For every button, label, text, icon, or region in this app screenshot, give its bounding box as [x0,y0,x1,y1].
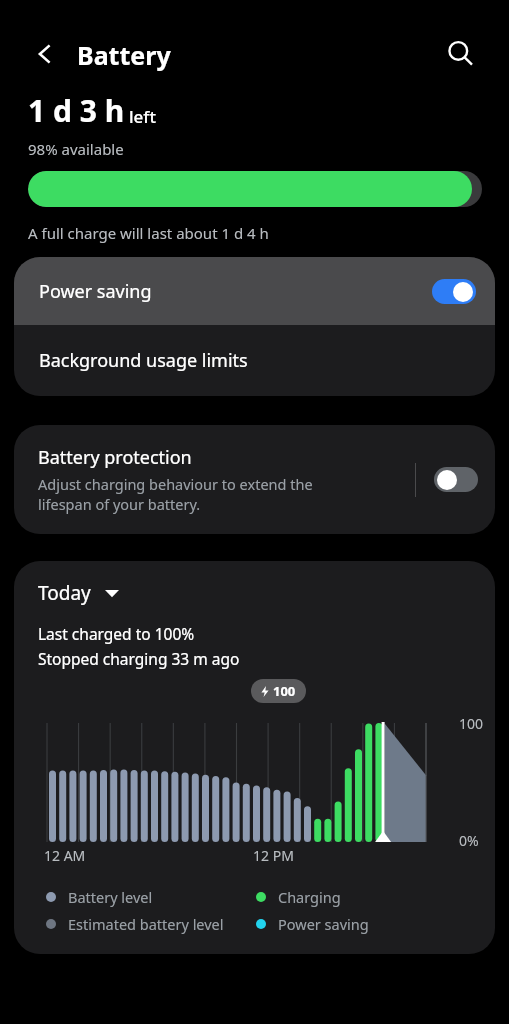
button[interactable]: Off [434,467,478,492]
staticText: A full charge will last about 1 d 4 h [28,223,269,243]
staticText: Battery [77,38,171,72]
staticText: 100 [459,714,484,733]
staticText: 0% [459,831,479,850]
staticText: Last charged to 100% [38,623,195,644]
staticText: Power saving [278,914,369,934]
staticText: Battery level [68,887,153,907]
staticText: left [129,105,156,128]
button[interactable]: Today [38,580,119,606]
button[interactable]: Power saving [14,257,495,325]
button[interactable]: On [432,279,476,304]
staticText: Estimated battery level [68,914,224,934]
button[interactable]: Battery protection [14,425,495,534]
staticText: Adjust charging behaviour to extend the … [38,474,313,514]
staticText: 98% available [28,139,124,159]
staticText: 100 [273,682,296,700]
staticText: Battery protection [38,445,192,470]
staticText: Charging [278,887,341,907]
button[interactable]: Background usage limits [14,325,495,396]
button[interactable]: Back [28,36,64,72]
staticText: 1 d 3 h [28,90,125,131]
staticText: Today [38,580,91,606]
staticText: Stopped charging 33 m ago [38,648,240,669]
staticText: 12 AM [44,846,86,865]
staticText: Power saving [39,279,432,304]
button[interactable]: Search [443,36,477,70]
staticText: Background usage limits [39,348,248,373]
staticText: 12 PM [253,846,294,865]
